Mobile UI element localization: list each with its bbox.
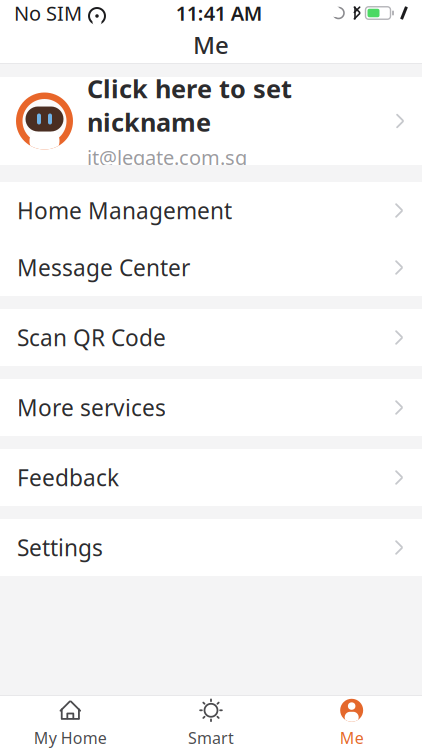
- staticText: it@legate.com.sg: [87, 144, 247, 170]
- button[interactable]: Settings: [0, 519, 422, 576]
- staticText: Me: [193, 29, 229, 61]
- staticText: Feedback: [17, 462, 119, 492]
- staticText: No SIM: [14, 0, 82, 26]
- button[interactable]: More services: [0, 379, 422, 436]
- button[interactable]: Click here to set nickname: [0, 77, 422, 165]
- button[interactable]: My Home: [0, 696, 141, 750]
- button[interactable]: Message Center: [0, 239, 422, 296]
- button[interactable]: Scan QR Code: [0, 309, 422, 366]
- staticText: 11:41 AM: [176, 0, 263, 26]
- staticText: Click here to set nickname: [87, 72, 292, 139]
- staticText: Smart: [188, 727, 234, 748]
- staticText: My Home: [34, 727, 107, 748]
- button[interactable]: Home Management: [0, 182, 422, 239]
- button[interactable]: Feedback: [0, 449, 422, 506]
- button[interactable]: Smart: [141, 696, 281, 750]
- staticText: Scan QR Code: [17, 322, 166, 352]
- staticText: More services: [17, 392, 166, 422]
- staticText: Message Center: [17, 252, 190, 282]
- button[interactable]: Me: [281, 696, 422, 750]
- staticText: Settings: [17, 532, 103, 562]
- staticText: Me: [340, 727, 364, 748]
- staticText: Home Management: [17, 195, 232, 225]
